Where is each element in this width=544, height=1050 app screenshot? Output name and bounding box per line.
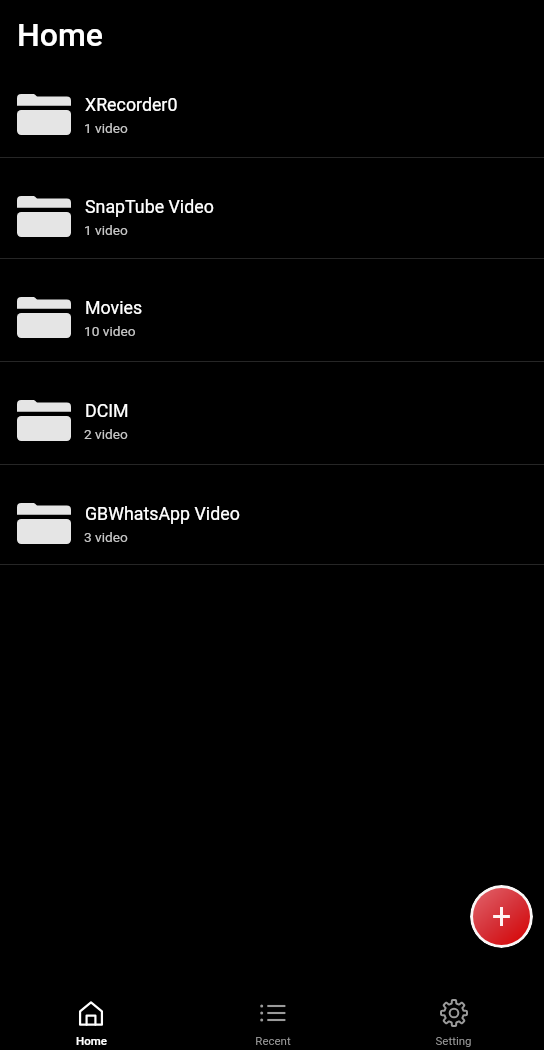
staticText: SnapTube Video (85, 196, 214, 217)
button[interactable]: DCIM (0, 362, 544, 465)
staticText: DCIM (85, 400, 129, 421)
staticText: 1 video (84, 120, 128, 136)
staticText: GBWhatsApp Video (85, 503, 240, 524)
staticText: XRecorder0 (85, 94, 178, 115)
button[interactable]: Add new (470, 885, 533, 948)
staticText: 1 video (84, 222, 128, 238)
button[interactable]: Movies (0, 259, 544, 362)
staticText: 3 video (84, 529, 128, 545)
staticText: Movies (85, 297, 143, 318)
button[interactable]: GBWhatsApp Video (0, 465, 544, 565)
button[interactable]: Recent (182, 978, 363, 1047)
button[interactable]: XRecorder0 (0, 56, 544, 158)
staticText: Setting (435, 1034, 472, 1047)
button[interactable]: SnapTube Video (0, 158, 544, 259)
staticText: Home (76, 1034, 107, 1047)
staticText: 2 video (84, 426, 128, 442)
staticText: 10 video (84, 323, 136, 339)
staticText: Recent (255, 1034, 291, 1047)
button[interactable]: Setting (363, 978, 544, 1047)
button[interactable]: Home (0, 978, 182, 1047)
staticText: Home (17, 16, 103, 54)
